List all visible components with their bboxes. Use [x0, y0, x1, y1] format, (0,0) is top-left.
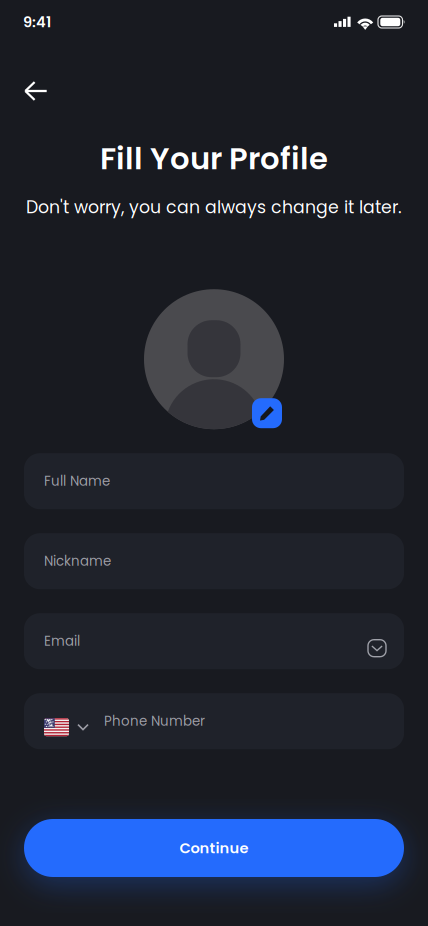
button[interactable]: Phone Number	[24, 693, 404, 749]
button[interactable]: Nickname	[24, 533, 404, 589]
staticText: 9:41	[23, 12, 51, 32]
button[interactable]: Back	[14, 69, 58, 113]
staticText: Fill Your Profile	[100, 137, 328, 180]
staticText: Full Name	[44, 472, 110, 491]
button[interactable]: Continue	[24, 819, 404, 877]
button[interactable]: Email	[24, 613, 404, 669]
staticText: Email	[44, 632, 80, 651]
staticText: Nickname	[44, 552, 111, 571]
staticText: Phone Number	[104, 712, 205, 731]
staticText: Continue	[179, 838, 248, 858]
staticText: Don't worry, you can always change it la…	[26, 195, 402, 219]
button[interactable]: Full Name	[24, 453, 404, 509]
button[interactable]: Edit profile photo	[252, 398, 282, 428]
